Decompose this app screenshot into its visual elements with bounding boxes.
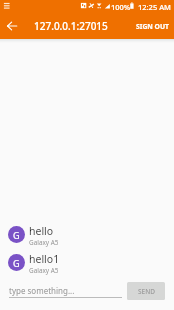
staticText: Galaxy A5 bbox=[29, 238, 59, 247]
staticText: SIGN OUT bbox=[136, 22, 170, 31]
button[interactable]: G bbox=[0, 248, 174, 276]
staticText: SEND bbox=[138, 287, 155, 296]
staticText: Galaxy A5 bbox=[29, 266, 59, 275]
staticText: G bbox=[13, 229, 20, 241]
staticText: hello bbox=[29, 224, 54, 238]
button[interactable]: SEND bbox=[127, 282, 165, 300]
staticText: hello1 bbox=[29, 252, 60, 266]
button[interactable]: SIGN OUT bbox=[131, 18, 174, 35]
staticText: 100% bbox=[111, 2, 131, 12]
button[interactable]: G bbox=[0, 220, 174, 248]
staticText: type something... bbox=[9, 285, 75, 296]
staticText: G bbox=[13, 257, 20, 269]
button[interactable]: Back bbox=[0, 14, 24, 38]
staticText: 127.0.0.1:27015 bbox=[34, 19, 108, 33]
staticText: 12:25 AM bbox=[138, 2, 171, 12]
